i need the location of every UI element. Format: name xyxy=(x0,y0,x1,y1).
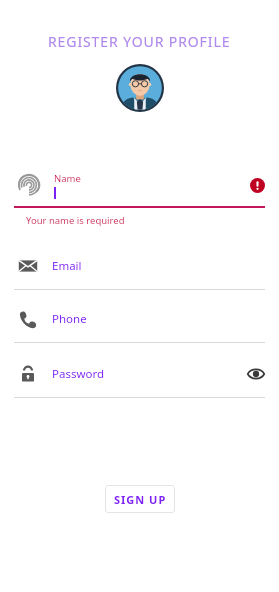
other: Show password xyxy=(247,365,265,383)
other: Fingerprint xyxy=(18,174,40,196)
other: Email xyxy=(18,256,38,276)
button[interactable]: SIGN UP xyxy=(105,485,175,513)
staticText: SIGN UP xyxy=(114,492,167,507)
button[interactable]: Email xyxy=(0,251,279,290)
staticText: Name xyxy=(54,172,81,185)
staticText: Password xyxy=(52,366,247,382)
other: Error xyxy=(250,178,265,193)
staticText: Phone xyxy=(52,311,265,327)
button[interactable]: Phone xyxy=(0,304,279,343)
button[interactable]: Password xyxy=(0,359,279,398)
other: Password xyxy=(18,364,38,384)
button[interactable]: Fingerprint xyxy=(0,167,279,227)
staticText: Your name is required xyxy=(26,214,125,227)
staticText: REGISTER YOUR PROFILE xyxy=(48,32,231,51)
other: Phone xyxy=(18,309,38,329)
staticText: Email xyxy=(52,258,265,274)
